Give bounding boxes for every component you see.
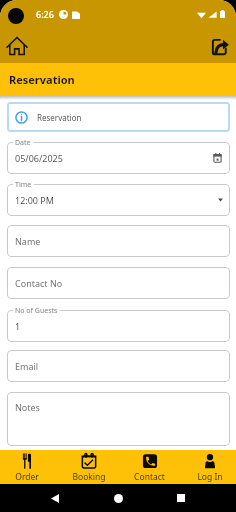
button[interactable]: Contact [128,450,171,484]
button[interactable]: Order [5,450,48,484]
staticText: Order [15,471,39,483]
staticText: Booking [72,471,106,483]
button[interactable]: Pick date [208,149,226,167]
button[interactable] [7,310,230,342]
staticText: No of Guests [15,306,58,316]
button[interactable]: Log In [188,450,231,484]
staticText: Contact No [15,277,63,289]
staticText: Time [15,180,32,190]
button[interactable] [7,184,230,216]
staticText: 6:26 [36,8,54,20]
button[interactable]: Home [4,33,30,59]
button[interactable]: Select time [212,192,228,208]
staticText: Notes [15,401,40,413]
button[interactable] [7,392,230,446]
staticText: Reservation [9,72,75,87]
staticText: Name [15,235,41,247]
button[interactable]: Reservation [7,102,230,132]
button[interactable]: Share [206,33,232,59]
staticText: Email [15,360,39,372]
staticText: Contact [134,471,165,483]
button[interactable]: Recent apps [170,487,192,509]
staticText: Log In [197,471,223,483]
staticText: 05/06/2025 [15,152,63,164]
button[interactable]: Booking [67,450,110,484]
staticText: Reservation [37,112,82,123]
button[interactable]: Home [107,487,129,509]
staticText: 1 [15,320,21,332]
button[interactable] [7,142,230,174]
button[interactable] [7,350,230,382]
button[interactable]: Back [44,487,66,509]
button[interactable] [7,267,230,299]
staticText: 12:00 PM [15,194,54,206]
button[interactable] [7,225,230,257]
staticText: Date [15,138,31,148]
